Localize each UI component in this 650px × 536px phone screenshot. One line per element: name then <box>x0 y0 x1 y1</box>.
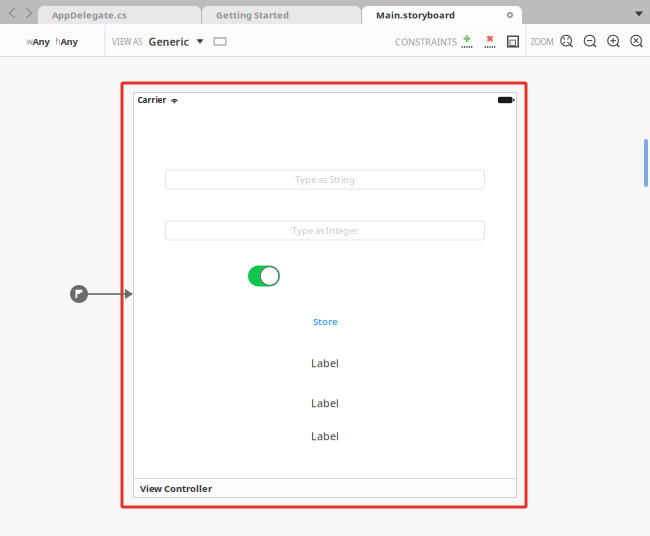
staticText: View Controller <box>140 482 212 495</box>
staticText: Carrier <box>137 95 166 105</box>
button[interactable]: Update frames <box>502 25 524 58</box>
button[interactable]: AppDelegate.cs <box>38 6 201 24</box>
button[interactable]: Add constraints <box>456 25 478 58</box>
button[interactable]: Main.storyboard <box>362 6 522 24</box>
staticText: AppDelegate.cs <box>52 9 127 21</box>
staticText: Label <box>311 396 339 410</box>
staticText: ZOOM <box>530 37 553 47</box>
button[interactable]: Open document list <box>628 2 650 26</box>
staticText: Type as String <box>295 173 355 186</box>
staticText: Generic <box>148 34 188 49</box>
staticText: Getting Started <box>216 9 289 21</box>
staticText: w <box>26 36 32 47</box>
button[interactable]: Forward <box>21 1 37 25</box>
button[interactable]: Store <box>302 313 348 329</box>
staticText: VIEW AS <box>112 37 142 47</box>
staticText: Any <box>32 35 49 48</box>
staticText: Label <box>311 356 339 370</box>
button[interactable]: Actual size <box>626 25 648 58</box>
button[interactable]: Zoom out <box>579 25 601 58</box>
button[interactable]: Back <box>4 1 20 25</box>
staticText: Type as Integer <box>292 224 358 237</box>
staticText: CONSTRAINTS <box>395 36 457 48</box>
button[interactable]: Getting Started <box>202 6 361 24</box>
staticText: Label <box>311 429 339 443</box>
button[interactable]: Zoom in <box>603 25 625 58</box>
button[interactable]: Device orientation <box>208 25 232 58</box>
staticText: h <box>55 36 60 47</box>
button[interactable]: Clear constraints <box>479 25 501 58</box>
button[interactable]: Zoom to fit <box>556 25 578 58</box>
button[interactable]: Generic <box>145 25 207 58</box>
staticText: Store <box>313 315 337 328</box>
staticText: Any <box>60 35 77 48</box>
button[interactable]: w <box>0 25 104 58</box>
staticText: Main.storyboard <box>376 9 455 21</box>
